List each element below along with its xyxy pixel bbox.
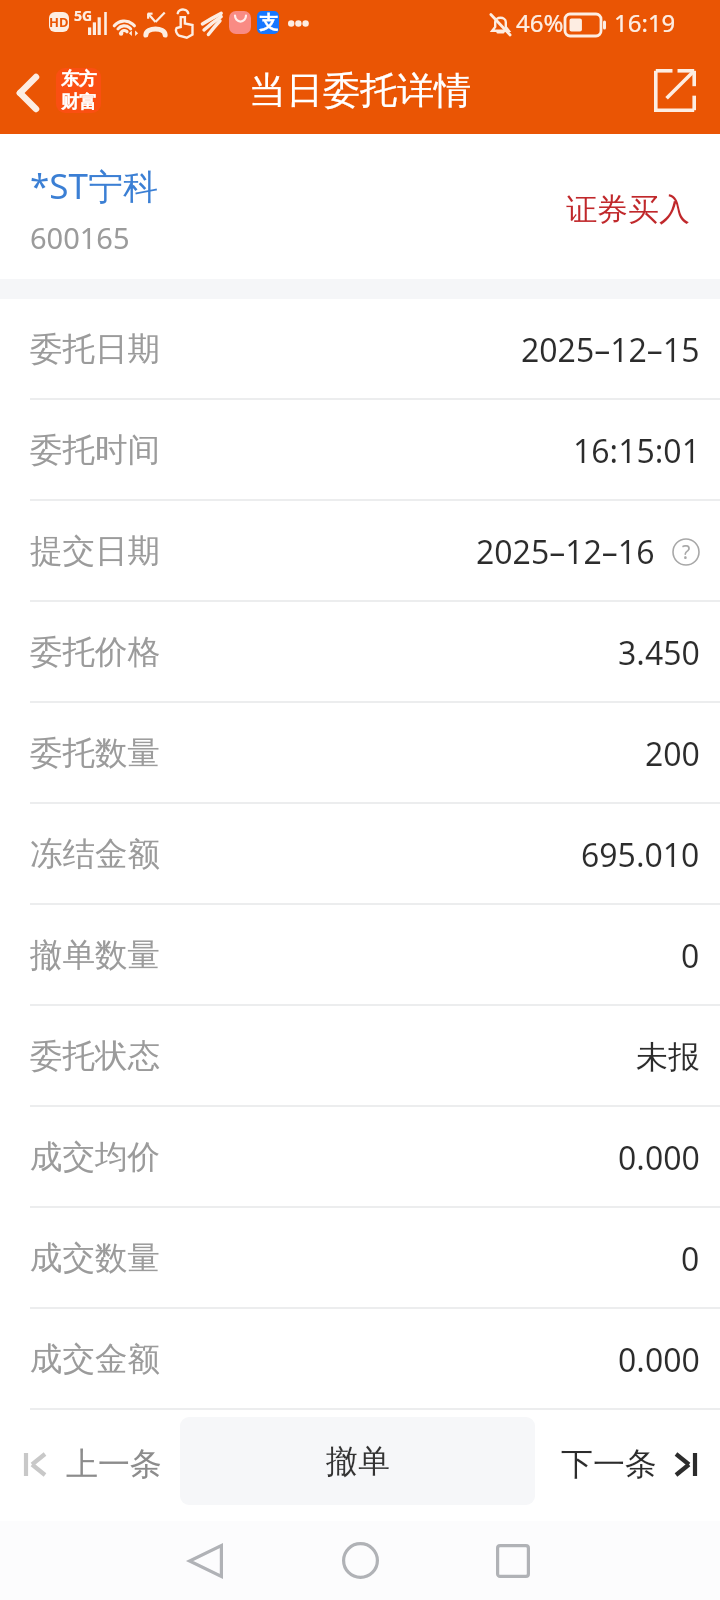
staticText: ?: [682, 539, 691, 565]
staticText: 东方: [61, 68, 97, 91]
button[interactable]: Back: [165, 1521, 245, 1600]
staticText: 委托价格: [30, 632, 160, 673]
staticText: 16:15:01: [573, 429, 700, 473]
button[interactable]: 撤单: [180, 1417, 535, 1505]
button[interactable]: 成交数量: [0, 1208, 720, 1309]
staticText: 当日委托详情: [249, 67, 471, 114]
staticText: 成交数量: [30, 1238, 160, 1279]
button[interactable]: *ST宁科: [0, 134, 720, 279]
button[interactable]: 委托数量: [0, 703, 720, 804]
button[interactable]: 委托时间: [0, 400, 720, 501]
staticText: 委托时间: [30, 430, 160, 471]
staticText: 16:19: [614, 6, 676, 39]
staticText: 0.000: [618, 1136, 700, 1180]
button[interactable]: 提交日期: [0, 501, 720, 602]
button[interactable]: 上一条: [14, 1432, 172, 1496]
staticText: 成交均价: [30, 1137, 160, 1178]
staticText: 0.000: [618, 1338, 700, 1382]
staticText: 200: [645, 732, 700, 776]
button[interactable]: 成交金额: [0, 1309, 720, 1410]
button[interactable]: Share: [644, 60, 706, 120]
staticText: 0: [681, 1237, 700, 1281]
button[interactable]: 委托价格: [0, 602, 720, 703]
staticText: 冻结金额: [30, 834, 160, 875]
staticText: 695.010: [581, 833, 700, 877]
staticText: 委托数量: [30, 733, 160, 774]
staticText: 委托状态: [30, 1036, 160, 1077]
button[interactable]: Back: [4, 62, 52, 124]
staticText: 3.450: [618, 631, 700, 675]
button[interactable]: 委托状态: [0, 1006, 720, 1107]
staticText: 46%: [516, 6, 564, 39]
staticText: 财富: [61, 91, 97, 113]
staticText: HD: [49, 13, 69, 31]
staticText: 2025–12–16: [476, 530, 655, 574]
staticText: 上一条: [66, 1444, 162, 1484]
staticText: 2025–12–15: [521, 328, 700, 372]
staticText: 支: [259, 11, 278, 34]
button[interactable]: Home: [320, 1521, 400, 1600]
button[interactable]: 撤单数量: [0, 905, 720, 1006]
button[interactable]: Help about submit date: [672, 538, 700, 566]
button[interactable]: 委托日期: [0, 299, 720, 400]
button[interactable]: 成交均价: [0, 1107, 720, 1208]
staticText: 撤单数量: [30, 935, 160, 976]
staticText: 0: [681, 934, 700, 978]
button[interactable]: Recent apps: [473, 1521, 553, 1600]
staticText: 成交金额: [30, 1339, 160, 1380]
staticText: 委托日期: [30, 329, 160, 370]
staticText: 证券买入: [566, 190, 690, 229]
staticText: 提交日期: [30, 531, 160, 572]
button[interactable]: East Money: [56, 68, 101, 113]
staticText: 撤单: [326, 1441, 390, 1481]
staticText: *ST宁科: [30, 162, 158, 210]
button[interactable]: 下一条: [551, 1432, 707, 1496]
staticText: 5G: [74, 6, 93, 25]
staticText: 下一条: [561, 1444, 657, 1484]
staticText: 未报: [636, 1037, 700, 1077]
button[interactable]: 冻结金额: [0, 804, 720, 905]
staticText: 600165: [30, 218, 130, 257]
